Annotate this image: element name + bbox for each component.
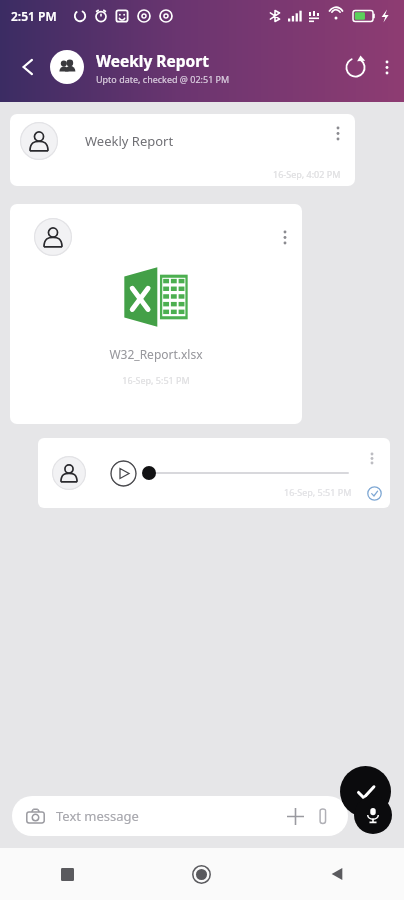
button[interactable]: Add (280, 801, 310, 831)
staticText: 16-Sep, 5:51 PM (284, 486, 352, 498)
button[interactable]: Confirm (340, 766, 391, 817)
button[interactable]: Recents (0, 848, 134, 900)
button[interactable]: Weekly Report (96, 50, 334, 85)
staticText: Text message (56, 807, 280, 825)
button[interactable]: More options (327, 122, 349, 145)
staticText: 16-Sep, 5:51 PM (122, 374, 190, 386)
staticText: 2:51 PM (11, 8, 57, 24)
button[interactable]: Weekly Report (10, 114, 355, 186)
button[interactable]: Home (134, 848, 269, 900)
staticText: Upto date, checked @ 02:51 PM (96, 73, 230, 85)
staticText: W32_Report.xlsx (109, 346, 203, 362)
button[interactable]: Camera (12, 796, 348, 836)
button[interactable]: More options (274, 226, 296, 249)
button[interactable]: Play (38, 438, 390, 508)
button[interactable]: Back (269, 848, 404, 900)
button[interactable]: Refresh (334, 46, 376, 88)
button[interactable]: Record voice message (354, 796, 392, 834)
button[interactable]: More options (10, 204, 302, 424)
button[interactable]: Attach (310, 803, 336, 829)
button[interactable]: Menu (376, 56, 398, 79)
button[interactable]: Back (6, 45, 50, 89)
button[interactable]: Camera (24, 805, 46, 827)
staticText: Weekly Report (96, 50, 209, 71)
button[interactable]: Group avatar (50, 50, 84, 84)
staticText: 16-Sep, 4:02 PM (273, 168, 341, 180)
staticText: Weekly Report (85, 132, 174, 150)
button[interactable]: Play (110, 460, 137, 487)
button[interactable]: More options (361, 448, 383, 469)
